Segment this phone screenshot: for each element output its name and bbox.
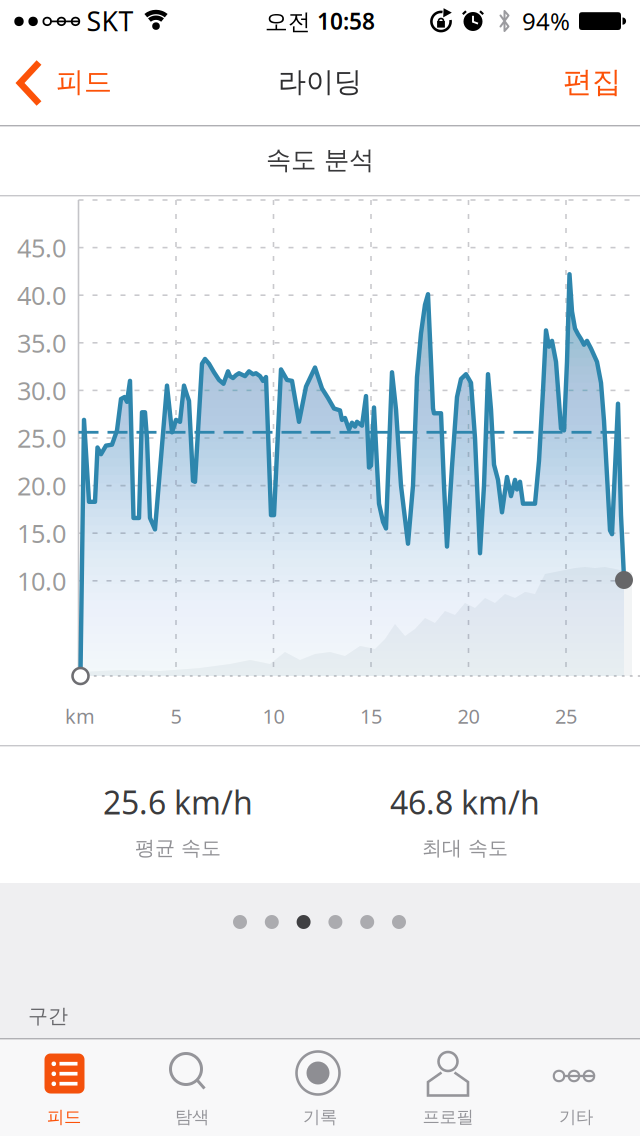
staticText: 25.0	[17, 421, 66, 455]
staticText: 20.0	[17, 469, 66, 502]
staticText: 기타	[559, 1106, 593, 1128]
staticText: 94%	[522, 5, 570, 37]
staticText: 최대 속도	[422, 836, 508, 860]
staticText: SKT	[86, 3, 133, 39]
staticText: 46.8 km/h	[390, 781, 540, 823]
staticText: 45.0	[17, 231, 66, 264]
staticText: 오전 10:58	[265, 6, 375, 36]
staticText: 편집	[563, 64, 621, 100]
staticText: 피드	[56, 65, 112, 99]
staticText: 기록	[303, 1106, 337, 1128]
staticText: 35.0	[17, 326, 66, 360]
staticText: 탐색	[175, 1106, 209, 1128]
staticText: 피드	[47, 1106, 81, 1128]
staticText: 10.0	[17, 564, 66, 598]
staticText: 5	[170, 703, 181, 729]
staticText: 25.6 km/h	[103, 781, 253, 823]
staticText: km	[65, 703, 95, 729]
staticText: 40.0	[17, 278, 66, 312]
staticText: 구간	[28, 1004, 68, 1028]
staticText: 10	[262, 703, 284, 729]
staticText: 25	[555, 703, 577, 729]
staticText: 프로필	[422, 1106, 473, 1128]
staticText: 30.0	[17, 374, 66, 407]
staticText: 속도 분석	[266, 144, 374, 175]
staticText: 20	[457, 703, 479, 729]
staticText: 15	[360, 703, 382, 729]
staticText: 15.0	[17, 516, 66, 550]
staticText: 라이딩	[278, 65, 362, 99]
staticText: 평균 속도	[135, 836, 221, 860]
